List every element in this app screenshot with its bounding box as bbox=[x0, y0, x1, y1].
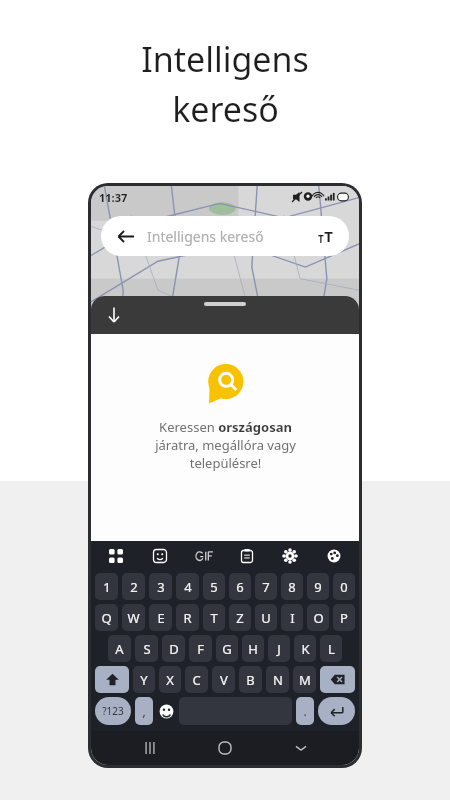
staticText: F bbox=[197, 640, 204, 658]
staticText: 8 bbox=[288, 578, 296, 596]
staticText: 2 bbox=[130, 578, 138, 596]
staticText: kereső bbox=[172, 86, 279, 132]
button[interactable]: V bbox=[212, 666, 235, 693]
button[interactable]: R bbox=[176, 604, 199, 631]
button[interactable]: E bbox=[149, 604, 172, 631]
staticText: 4 bbox=[184, 578, 192, 596]
button[interactable]: Shift bbox=[95, 666, 129, 693]
staticText: K bbox=[301, 640, 310, 658]
button[interactable]: Sticker bbox=[149, 545, 171, 567]
staticText: 6 bbox=[236, 578, 244, 596]
button[interactable]: 4 bbox=[176, 573, 199, 600]
staticText: U bbox=[261, 609, 271, 627]
button[interactable]: 6 bbox=[229, 573, 251, 600]
button[interactable]: Settings bbox=[279, 545, 301, 567]
button[interactable]: Q bbox=[95, 604, 118, 631]
staticText: O bbox=[313, 609, 324, 627]
button[interactable]: Text size bbox=[313, 224, 337, 248]
staticText: I bbox=[290, 609, 295, 627]
staticText: G bbox=[222, 640, 232, 658]
staticText: Intelligens bbox=[141, 36, 309, 82]
button[interactable]: S bbox=[135, 635, 158, 662]
button[interactable]: 5 bbox=[203, 573, 225, 600]
staticText: 7 bbox=[262, 578, 270, 596]
button[interactable]: I bbox=[281, 604, 303, 631]
button[interactable]: 0 bbox=[333, 573, 355, 600]
button[interactable]: F bbox=[189, 635, 212, 662]
staticText: R bbox=[183, 609, 192, 627]
staticText: H bbox=[248, 640, 258, 658]
staticText: 11:37 bbox=[99, 190, 128, 205]
button[interactable]: Back bbox=[113, 224, 137, 248]
button[interactable]: D bbox=[162, 635, 185, 662]
button[interactable]: 9 bbox=[307, 573, 329, 600]
button[interactable]: . bbox=[296, 697, 314, 725]
button[interactable]: T bbox=[203, 604, 225, 631]
button[interactable]: Backspace bbox=[320, 666, 355, 693]
staticText: A bbox=[115, 640, 124, 658]
button[interactable]: Back bbox=[101, 216, 349, 256]
button[interactable]: ?123 bbox=[95, 697, 131, 725]
button[interactable]: Theme bbox=[323, 545, 345, 567]
staticText: . bbox=[303, 703, 307, 719]
button[interactable]: Collapse bbox=[91, 296, 359, 334]
button[interactable]: L bbox=[320, 635, 342, 662]
button[interactable]: B bbox=[239, 666, 262, 693]
button[interactable]: Clipboard bbox=[236, 545, 258, 567]
staticText: ?123 bbox=[102, 704, 124, 718]
button[interactable]: 1 bbox=[95, 573, 118, 600]
button[interactable]: 2 bbox=[122, 573, 145, 600]
staticText: M bbox=[299, 671, 311, 689]
button[interactable]: H bbox=[242, 635, 264, 662]
staticText: B bbox=[246, 671, 255, 689]
staticText: E bbox=[157, 609, 165, 627]
button[interactable]: , bbox=[135, 697, 153, 725]
button[interactable]: GIF bbox=[192, 545, 214, 567]
staticText: L bbox=[328, 640, 335, 658]
staticText: 5 bbox=[210, 578, 218, 596]
button[interactable]: Home bbox=[208, 731, 242, 765]
staticText: , bbox=[142, 703, 146, 719]
staticText: Z bbox=[236, 609, 244, 627]
staticText: 9 bbox=[314, 578, 322, 596]
staticText: V bbox=[220, 671, 228, 689]
button[interactable]: C bbox=[185, 666, 208, 693]
button[interactable]: Hide keyboard bbox=[284, 731, 318, 765]
button[interactable]: Menu bbox=[105, 545, 127, 567]
button[interactable]: W bbox=[122, 604, 145, 631]
button[interactable]: U bbox=[255, 604, 277, 631]
staticText: 1 bbox=[103, 578, 111, 596]
button[interactable]: 3 bbox=[149, 573, 172, 600]
button[interactable]: A bbox=[108, 635, 131, 662]
button[interactable]: Enter bbox=[318, 697, 355, 725]
button[interactable]: P bbox=[333, 604, 355, 631]
staticText: C bbox=[192, 671, 201, 689]
staticText: P bbox=[340, 609, 348, 627]
staticText: X bbox=[166, 671, 174, 689]
button[interactable]: Recents bbox=[133, 731, 167, 765]
button[interactable]: G bbox=[216, 635, 238, 662]
staticText: S bbox=[143, 640, 151, 658]
button[interactable]: K bbox=[294, 635, 316, 662]
button[interactable]: N bbox=[266, 666, 289, 693]
button[interactable]: J bbox=[268, 635, 290, 662]
button[interactable]: X bbox=[159, 666, 181, 693]
button[interactable]: O bbox=[307, 604, 329, 631]
staticText: 3 bbox=[157, 578, 165, 596]
staticText: T bbox=[210, 609, 218, 627]
staticText: Y bbox=[140, 671, 148, 689]
staticText: Q bbox=[101, 609, 112, 627]
button[interactable]: 8 bbox=[281, 573, 303, 600]
staticText: N bbox=[273, 671, 283, 689]
staticText: J bbox=[277, 640, 281, 658]
staticText: D bbox=[169, 640, 179, 658]
button[interactable]: Z bbox=[229, 604, 251, 631]
staticText: T bbox=[324, 226, 333, 246]
button[interactable]: 7 bbox=[255, 573, 277, 600]
button[interactable]: M bbox=[293, 666, 316, 693]
button[interactable]: Collapse bbox=[103, 304, 125, 326]
staticText: T bbox=[318, 232, 324, 246]
button[interactable]: Y bbox=[133, 666, 155, 693]
button[interactable]: Emoji bbox=[157, 697, 175, 725]
